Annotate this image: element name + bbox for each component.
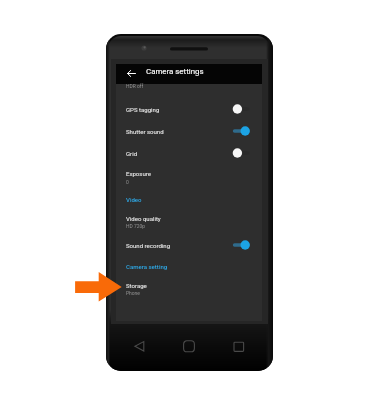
staticText: Camera setting <box>126 263 168 270</box>
staticText: 0 <box>126 179 129 185</box>
button[interactable]: Shutter sound <box>116 123 262 145</box>
staticText: Sound recording <box>126 242 171 249</box>
button[interactable]: Off <box>229 146 253 160</box>
button[interactable]: Video quality <box>116 210 262 232</box>
button[interactable]: GPS tagging <box>116 101 262 123</box>
button[interactable]: On <box>229 238 253 252</box>
staticText: Storage <box>126 282 147 289</box>
staticText: Grid <box>126 150 138 157</box>
staticText: GPS tagging <box>126 106 160 113</box>
staticText: Camera settings <box>146 67 204 76</box>
staticText: Video <box>126 196 142 203</box>
staticText: Shutter sound <box>126 128 164 135</box>
button[interactable]: Exposure <box>116 165 262 187</box>
staticText: HDR off <box>126 83 144 89</box>
button[interactable]: On <box>229 124 253 138</box>
staticText: Video quality <box>126 215 161 222</box>
button[interactable]: Sound recording <box>116 237 262 259</box>
button[interactable]: Grid <box>116 145 262 167</box>
button[interactable]: Back <box>131 338 148 355</box>
button[interactable]: Recent apps <box>230 338 247 355</box>
staticText: Phone <box>126 290 140 296</box>
button[interactable]: Storage <box>116 277 262 299</box>
staticText: HD 720p <box>126 223 145 229</box>
button[interactable]: Home <box>181 338 198 355</box>
button[interactable]: Navigate up <box>124 67 137 80</box>
staticText: Exposure <box>126 170 151 177</box>
button[interactable]: Off <box>229 102 253 116</box>
